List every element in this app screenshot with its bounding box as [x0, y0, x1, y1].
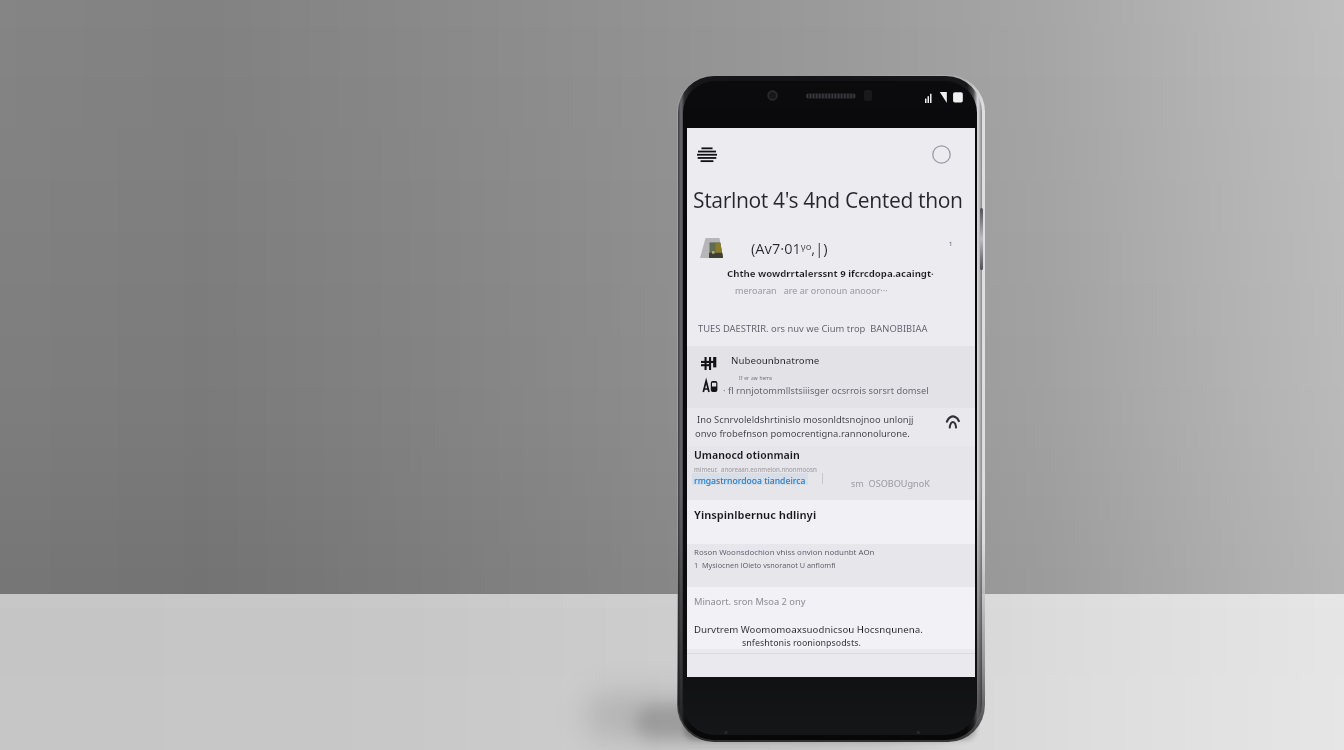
staticText: snfeshtonis roonionpsodsts.	[742, 637, 861, 649]
button[interactable]	[687, 446, 975, 500]
staticText: Ino Scnrvoleldshrtinislo mosonldtsnojnoo…	[697, 413, 914, 426]
button[interactable]	[687, 500, 975, 544]
staticText: rmgastrnordooa tiandeirca	[694, 475, 806, 487]
staticText: meroaran are ar oronoun anooor···	[735, 284, 888, 296]
staticText: ᴵᶠ ᵉʳ ᵃʷ ʰᵉᵐˢ	[739, 374, 773, 384]
button[interactable]: rmgastrnordooa tiandeirca	[694, 475, 806, 487]
staticText: sm OSOBOUgnoK	[851, 477, 930, 489]
button[interactable]	[687, 544, 975, 587]
staticText: Durvtrem Woomomoaxsuodnicsou Hocsnqunena…	[694, 623, 923, 636]
button[interactable]	[687, 587, 975, 649]
staticText: onvo frobefnson pomocrentigna.rannonolur…	[695, 427, 910, 440]
button[interactable]: Open navigation menu	[692, 140, 722, 170]
staticText: Starlnot 4's 4nd Cented thon	[693, 186, 963, 215]
staticText: (Av7·01ᵞᵒ,|)	[751, 238, 828, 258]
button[interactable]	[687, 408, 975, 446]
staticText: Roson Woonsdochion vhiss onvion nodunbt …	[694, 547, 875, 558]
button[interactable]: Account profile	[927, 140, 955, 168]
staticText: Yinspinlbernuc hdlinyi	[694, 507, 817, 522]
staticText: Nubeounbnatrome	[731, 354, 820, 367]
staticText: mimeur. anoreaan.eonmeion.nnonmoosn	[694, 465, 817, 473]
staticText: Umanocd otionmain	[694, 448, 800, 462]
staticText: Chthe wowdrrtalerssnt 9 ifcrcdopa.acaing…	[727, 267, 934, 280]
staticText: TUES DAESTRIR. ors nuv we Cium trop BANO…	[698, 322, 928, 335]
staticText: ¹	[949, 240, 953, 252]
staticText: Minaort. sron Msoa 2 ony	[694, 595, 806, 608]
button[interactable]	[687, 228, 975, 345]
button[interactable]: Yinspinlbernuc hdlinyi	[694, 507, 817, 522]
staticText: · fl rnnjotommllstsiiisger ocsrrois sors…	[723, 384, 929, 397]
button[interactable]	[687, 346, 975, 408]
staticText: 1 Mysiocnen lOieto vsnoranot U anflomfi	[694, 560, 836, 570]
